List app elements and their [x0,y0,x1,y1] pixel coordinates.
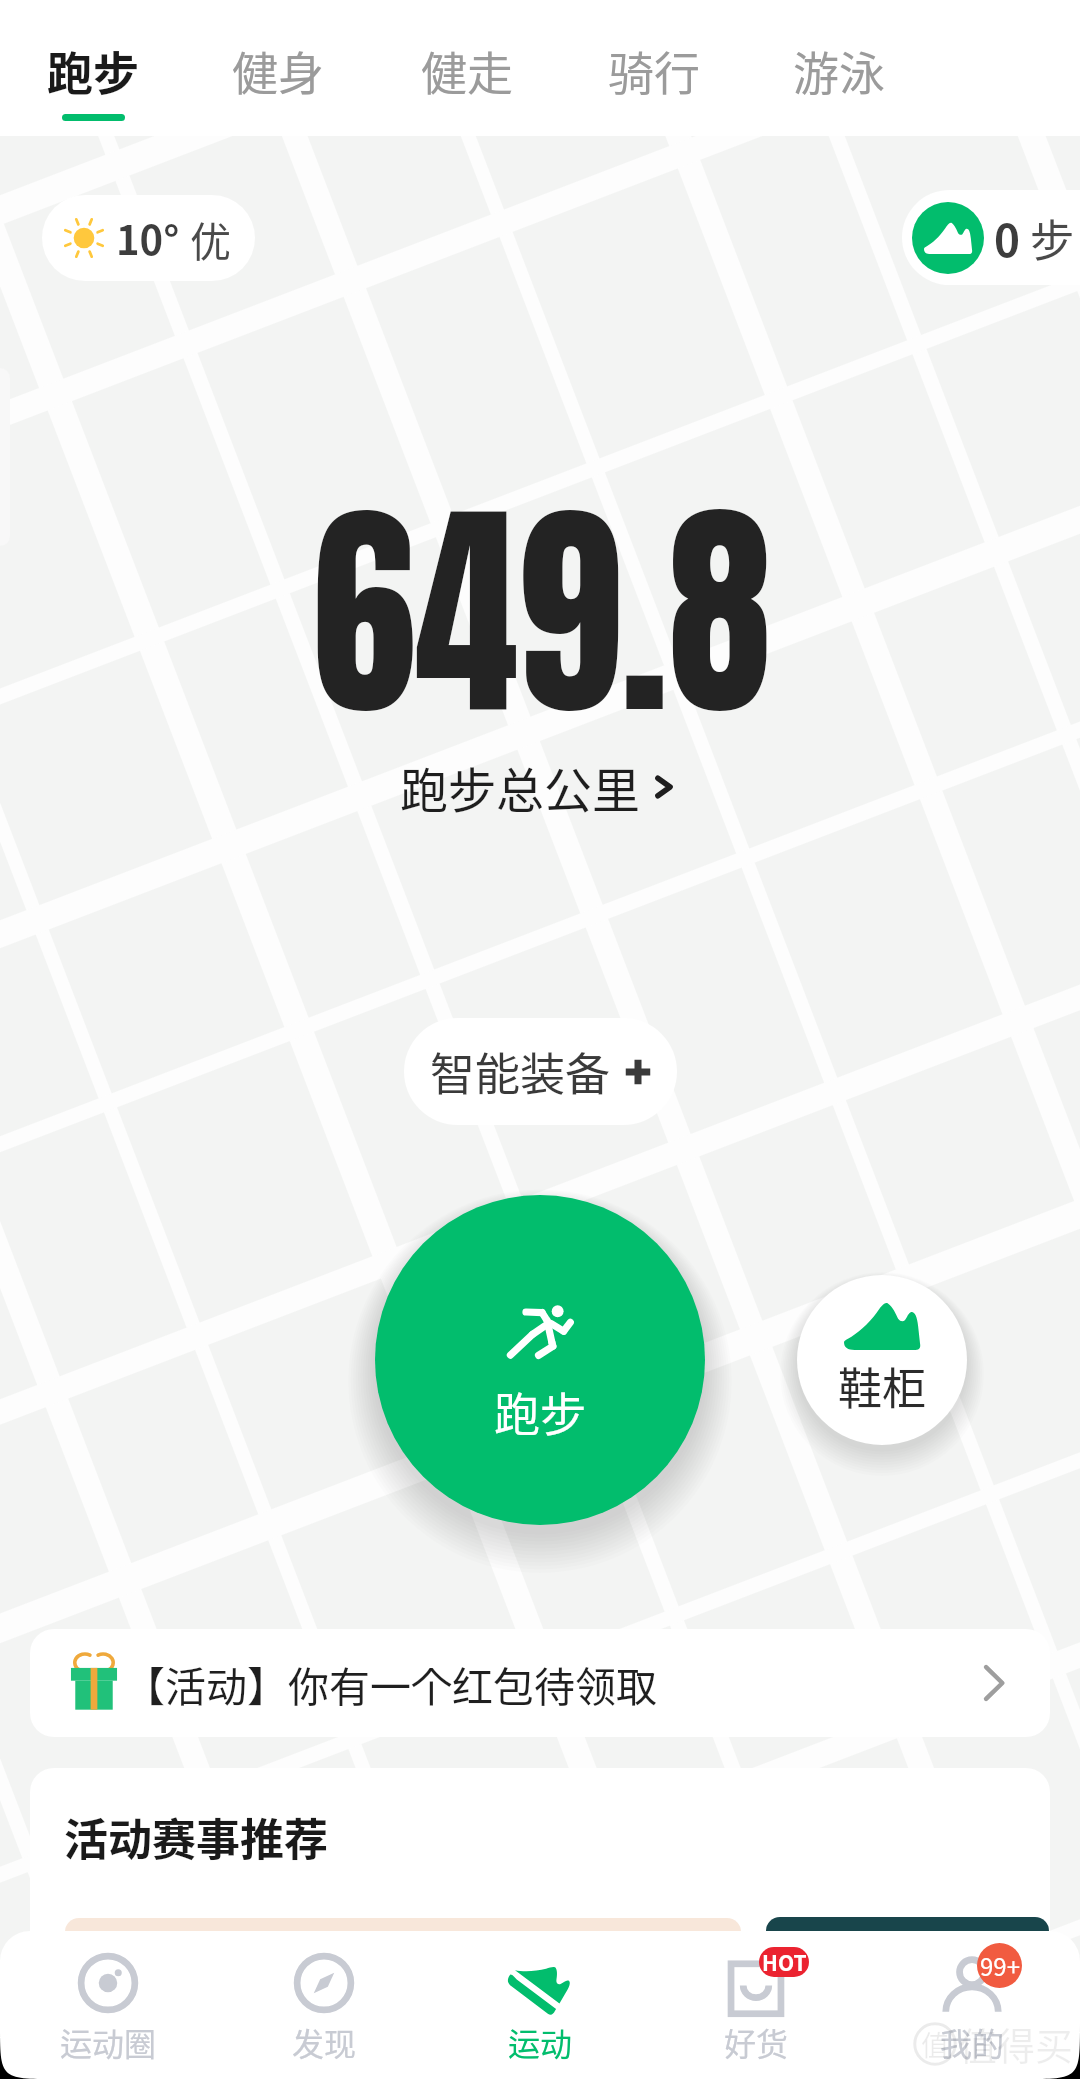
staticText: 0 [994,206,1020,270]
button[interactable]: 10° [42,195,255,281]
staticText: 游泳 [793,37,885,104]
button[interactable]: 游泳 [793,0,885,136]
button[interactable]: HOT [648,1931,864,2079]
button[interactable]: 智能装备 [404,1018,677,1125]
staticText: 优 [190,209,231,268]
button[interactable]: 活动赛事推荐 [30,1768,1050,1938]
button[interactable]: 【活动】你有一个红包待领取 [30,1629,1050,1737]
staticText: 运动 [508,2019,573,2065]
button[interactable]: 健走 [421,0,513,136]
staticText: 10° [116,209,180,267]
staticText: 骑行 [608,37,700,104]
button[interactable]: 鞋柜 [797,1275,967,1445]
staticText: 跑步总公里 [400,752,641,822]
staticText: 跑步 [47,37,139,104]
staticText: 我的 [940,2019,1005,2065]
button[interactable]: 0 [902,190,1080,285]
staticText: 值 [921,2024,950,2065]
button[interactable]: 健身 [232,0,324,136]
staticText: 健身 [232,37,324,104]
staticText: 运动圈 [60,2019,157,2065]
button[interactable]: 运动 [432,1931,648,2079]
staticText: 步 [1030,206,1074,270]
staticText: 【活动】你有一个红包待领取 [124,1654,657,1713]
staticText: HOT [762,1947,807,1977]
button[interactable]: 开始跑步 [375,1195,705,1525]
button[interactable]: 跑步 [47,0,139,136]
button[interactable]: 运动圈 [0,1931,216,2079]
staticText: 跑步 [494,1378,586,1445]
staticText: 健走 [421,37,513,104]
staticText: 发现 [292,2019,357,2065]
staticText: 值得买 [959,2016,1074,2071]
button[interactable]: 99+ [864,1931,1080,2079]
staticText: 好货 [724,2019,789,2065]
staticText: 活动赛事推荐 [64,1805,328,1869]
button[interactable]: 跑步总公里 [400,752,681,822]
button[interactable]: 发现 [216,1931,432,2079]
staticText: 智能装备 [430,1039,611,1104]
staticText: 鞋柜 [838,1354,926,1418]
staticText: 99+ [980,1948,1020,1983]
staticText: 649.8 [312,438,772,784]
button[interactable]: 骑行 [608,0,700,136]
